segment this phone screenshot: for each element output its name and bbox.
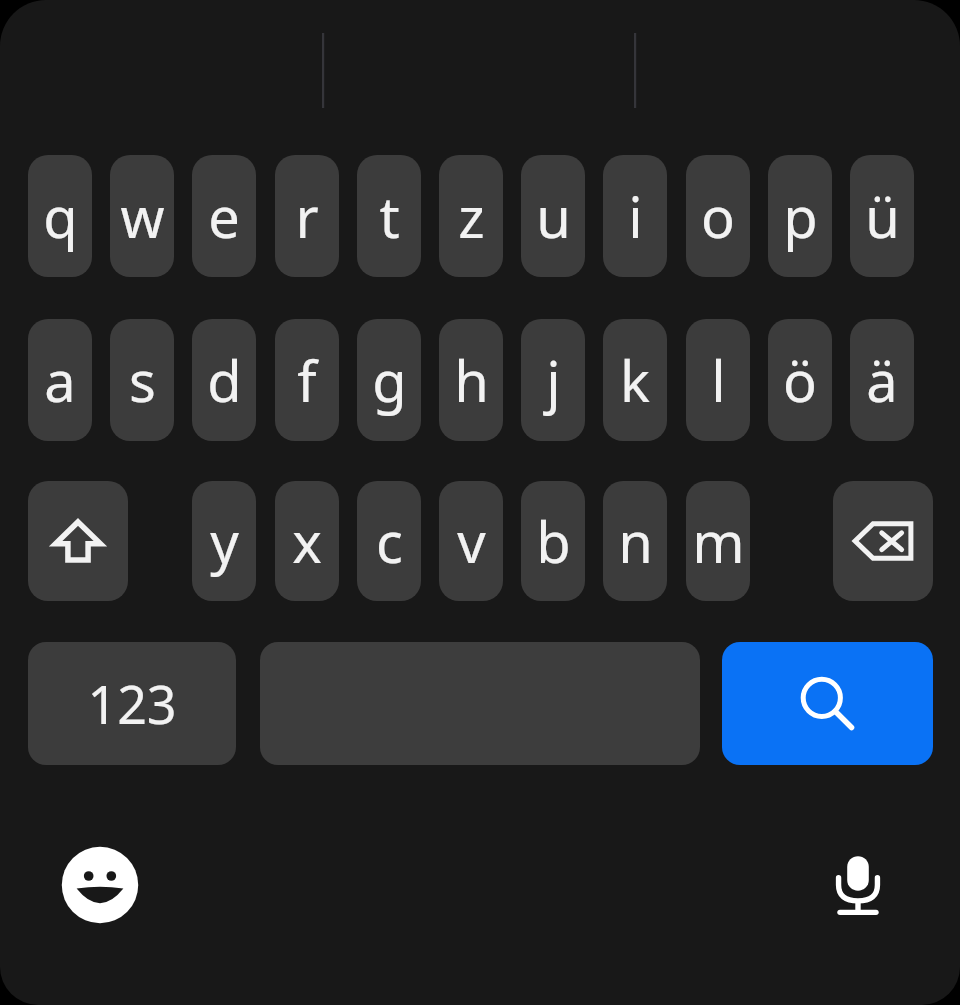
- button[interactable]: w: [110, 155, 174, 277]
- staticText: ü: [865, 178, 900, 254]
- staticText: s: [129, 342, 156, 418]
- button[interactable]: q: [28, 155, 92, 277]
- staticText: p: [783, 178, 818, 254]
- staticText: e: [208, 178, 240, 254]
- button[interactable]: a: [28, 319, 92, 441]
- staticText: v: [457, 503, 486, 579]
- staticText: z: [458, 178, 485, 254]
- button[interactable]: ä: [850, 319, 914, 441]
- button[interactable]: g: [357, 319, 421, 441]
- button[interactable]: c: [357, 481, 421, 601]
- button[interactable]: e: [192, 155, 256, 277]
- button[interactable]: Emoji: [58, 843, 142, 927]
- staticText: d: [207, 342, 242, 418]
- staticText: h: [454, 342, 489, 418]
- button[interactable]: f: [275, 319, 339, 441]
- staticText: q: [43, 178, 78, 254]
- staticText: x: [292, 503, 322, 579]
- button[interactable]: ö: [768, 319, 832, 441]
- button[interactable]: Voice input: [816, 843, 900, 927]
- staticText: ä: [866, 342, 898, 418]
- button[interactable]: j: [521, 319, 585, 441]
- staticText: i: [628, 178, 643, 254]
- button[interactable]: k: [603, 319, 667, 441]
- button[interactable]: z: [439, 155, 503, 277]
- staticText: b: [536, 503, 571, 579]
- staticText: m: [692, 503, 745, 579]
- button[interactable]: h: [439, 319, 503, 441]
- button[interactable]: o: [686, 155, 750, 277]
- staticText: u: [536, 178, 571, 254]
- button[interactable]: x: [275, 481, 339, 601]
- staticText: j: [546, 342, 561, 418]
- staticText: y: [210, 503, 239, 579]
- button[interactable]: ü: [850, 155, 914, 277]
- button[interactable]: s: [110, 319, 174, 441]
- staticText: n: [618, 503, 653, 579]
- staticText: r: [295, 178, 319, 254]
- button[interactable]: Shift: [28, 481, 128, 601]
- button[interactable]: b: [521, 481, 585, 601]
- button[interactable]: y: [192, 481, 256, 601]
- button[interactable]: 123: [28, 642, 236, 765]
- button[interactable]: r: [275, 155, 339, 277]
- button[interactable]: i: [603, 155, 667, 277]
- staticText: a: [44, 342, 76, 418]
- button[interactable]: v: [439, 481, 503, 601]
- button[interactable]: p: [768, 155, 832, 277]
- button[interactable]: l: [686, 319, 750, 441]
- staticText: t: [379, 178, 400, 254]
- staticText: k: [620, 342, 650, 418]
- button[interactable]: d: [192, 319, 256, 441]
- staticText: ö: [783, 342, 817, 418]
- button[interactable]: Search: [722, 642, 933, 765]
- button[interactable]: m: [686, 481, 750, 601]
- staticText: g: [372, 342, 407, 418]
- staticText: c: [376, 503, 403, 579]
- staticText: 123: [87, 668, 177, 739]
- staticText: w: [120, 178, 165, 254]
- button[interactable]: u: [521, 155, 585, 277]
- button[interactable]: Backspace: [833, 481, 933, 601]
- button[interactable]: n: [603, 481, 667, 601]
- staticText: o: [701, 178, 735, 254]
- button[interactable]: t: [357, 155, 421, 277]
- staticText: f: [297, 342, 317, 418]
- staticText: l: [711, 342, 726, 418]
